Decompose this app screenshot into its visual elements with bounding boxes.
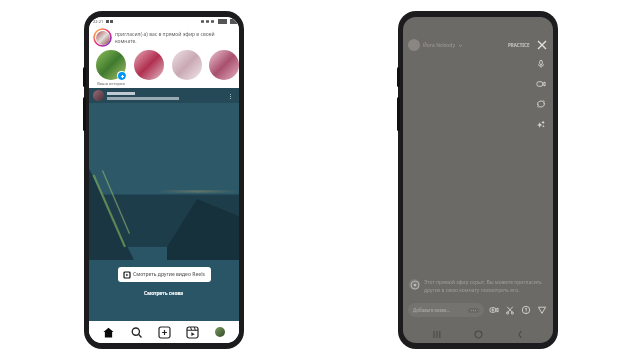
button[interactable]: Ваша история [94,50,128,86]
staticText: Смотреть другие видео Reels [133,271,205,278]
button[interactable] [208,50,239,86]
button[interactable]: Close [536,39,548,51]
staticText: Этот прямой эфир скрыт. Вы можете пригла… [424,279,547,293]
button[interactable]: пригласил(-а) вас в прямой эфир в своей … [89,26,239,49]
button[interactable]: Send [536,304,548,316]
button[interactable]: Reels [183,323,201,341]
button[interactable] [132,50,166,86]
staticText: Йога Nobody [423,42,456,49]
button[interactable]: Create [155,323,173,341]
button[interactable]: Add video [488,304,500,316]
button[interactable]: Смотреть снова [136,288,192,299]
button[interactable]: Switch camera [534,97,547,110]
button[interactable]: Смотреть другие видео Reels [118,267,211,282]
button[interactable]: More options [225,91,235,101]
button[interactable]: Question [520,304,532,316]
button[interactable]: Home [99,323,117,341]
button[interactable]: Effects [534,117,547,130]
staticText: пригласил(-а) вас в прямой эфир в своей … [115,31,234,45]
button[interactable]: Microphone [534,57,547,70]
staticText: Ваша история [94,81,128,86]
button[interactable]: Recents [429,326,445,342]
button[interactable] [170,50,204,86]
button[interactable]: Back [512,326,528,342]
button[interactable]: Search [127,323,145,341]
button[interactable]: Добавьте комм... [408,303,484,317]
staticText: Добавьте комм... [413,307,451,313]
staticText: PRACTICE [508,42,530,48]
staticText: 22:21 [93,19,104,24]
button[interactable]: Camera [534,77,547,90]
button[interactable]: Home [470,326,486,342]
button[interactable]: Cut [504,304,516,316]
staticText: Смотреть снова [144,290,184,297]
button[interactable]: Profile [211,323,229,341]
